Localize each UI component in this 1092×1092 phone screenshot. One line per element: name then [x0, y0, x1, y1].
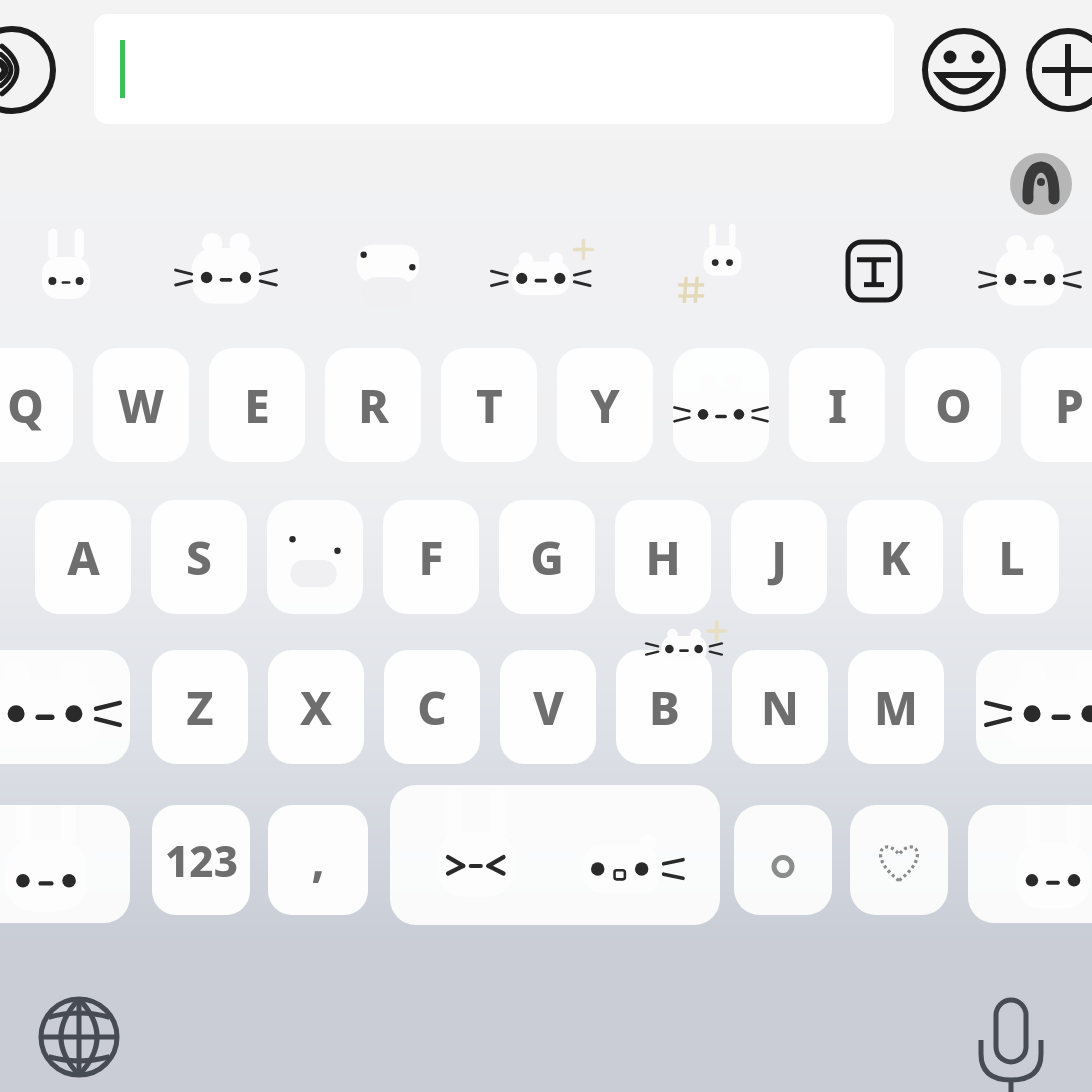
staticText: K [879, 526, 911, 589]
button[interactable]: Key [734, 805, 832, 915]
staticText: J [771, 526, 787, 589]
staticText: T [476, 374, 503, 437]
button[interactable]: J [731, 500, 827, 614]
button[interactable]: Sticker suggestion [336, 228, 440, 314]
staticText: W [118, 374, 164, 437]
button[interactable]: Sticker suggestion [14, 230, 118, 310]
button[interactable]: E [209, 348, 305, 462]
button[interactable]: Sticker suggestion [660, 228, 764, 314]
staticText: P [1055, 374, 1084, 437]
button[interactable]: V [500, 650, 596, 764]
button[interactable]: X [268, 650, 364, 764]
button[interactable]: Q [0, 348, 73, 462]
staticText: E [244, 374, 270, 437]
button[interactable]: L [963, 500, 1059, 614]
button[interactable]: Key [976, 650, 1092, 764]
button[interactable]: Change language [30, 988, 128, 1086]
staticText: V [533, 676, 564, 739]
button[interactable]: , [268, 805, 368, 915]
button[interactable]: Key [968, 805, 1092, 923]
button[interactable]: Add [1024, 26, 1092, 114]
staticText: H [645, 526, 681, 589]
button[interactable] [94, 14, 894, 124]
button[interactable]: Key [850, 805, 948, 915]
button[interactable]: Text mode [846, 240, 902, 302]
button[interactable]: W [93, 348, 189, 462]
staticText: A [67, 526, 100, 589]
button[interactable]: O [905, 348, 1001, 462]
button[interactable]: A [35, 500, 131, 614]
staticText: X [300, 676, 332, 739]
button[interactable]: H [615, 500, 711, 614]
staticText: N [761, 676, 799, 739]
button[interactable]: Key [0, 805, 130, 923]
staticText: Y [590, 374, 620, 437]
button[interactable]: S [151, 500, 247, 614]
button[interactable]: Font [1010, 153, 1072, 215]
button[interactable]: 123 [152, 805, 250, 915]
button[interactable]: K [847, 500, 943, 614]
button[interactable]: F [383, 500, 479, 614]
button[interactable]: P [1021, 348, 1092, 462]
staticText: Q [7, 374, 44, 437]
button[interactable]: Sticker suggestion [978, 232, 1082, 312]
button[interactable]: Emoji [920, 26, 1008, 114]
button[interactable]: Key [673, 348, 769, 462]
button[interactable]: Z [152, 650, 248, 764]
staticText: C [417, 676, 447, 739]
staticText: O [935, 374, 972, 437]
button[interactable]: C [384, 650, 480, 764]
button[interactable]: T [441, 348, 537, 462]
staticText: S [186, 526, 212, 589]
button[interactable]: R [325, 348, 421, 462]
button[interactable]: Sticker suggestion [174, 230, 278, 310]
staticText: G [530, 526, 564, 589]
button[interactable]: Y [557, 348, 653, 462]
button[interactable]: N [732, 650, 828, 764]
button[interactable]: G [499, 500, 595, 614]
staticText: M [874, 676, 918, 739]
staticText: B [649, 676, 680, 739]
button[interactable]: I [789, 348, 885, 462]
button[interactable]: Voice typing [962, 988, 1060, 1086]
button[interactable]: Sticker suggestion [494, 232, 598, 312]
button[interactable]: Key [0, 650, 130, 764]
button[interactable]: Key [267, 500, 363, 614]
button[interactable]: B [616, 650, 712, 764]
staticText: 123 [165, 832, 238, 889]
staticText: L [998, 526, 1025, 589]
button[interactable]: M [848, 650, 944, 764]
staticText: Z [186, 676, 214, 739]
button[interactable]: Key [390, 785, 720, 925]
staticText: F [418, 526, 444, 589]
staticText: I [828, 374, 847, 437]
staticText: R [358, 374, 389, 437]
staticText: , [311, 830, 325, 890]
button[interactable]: Voice input [0, 26, 56, 114]
